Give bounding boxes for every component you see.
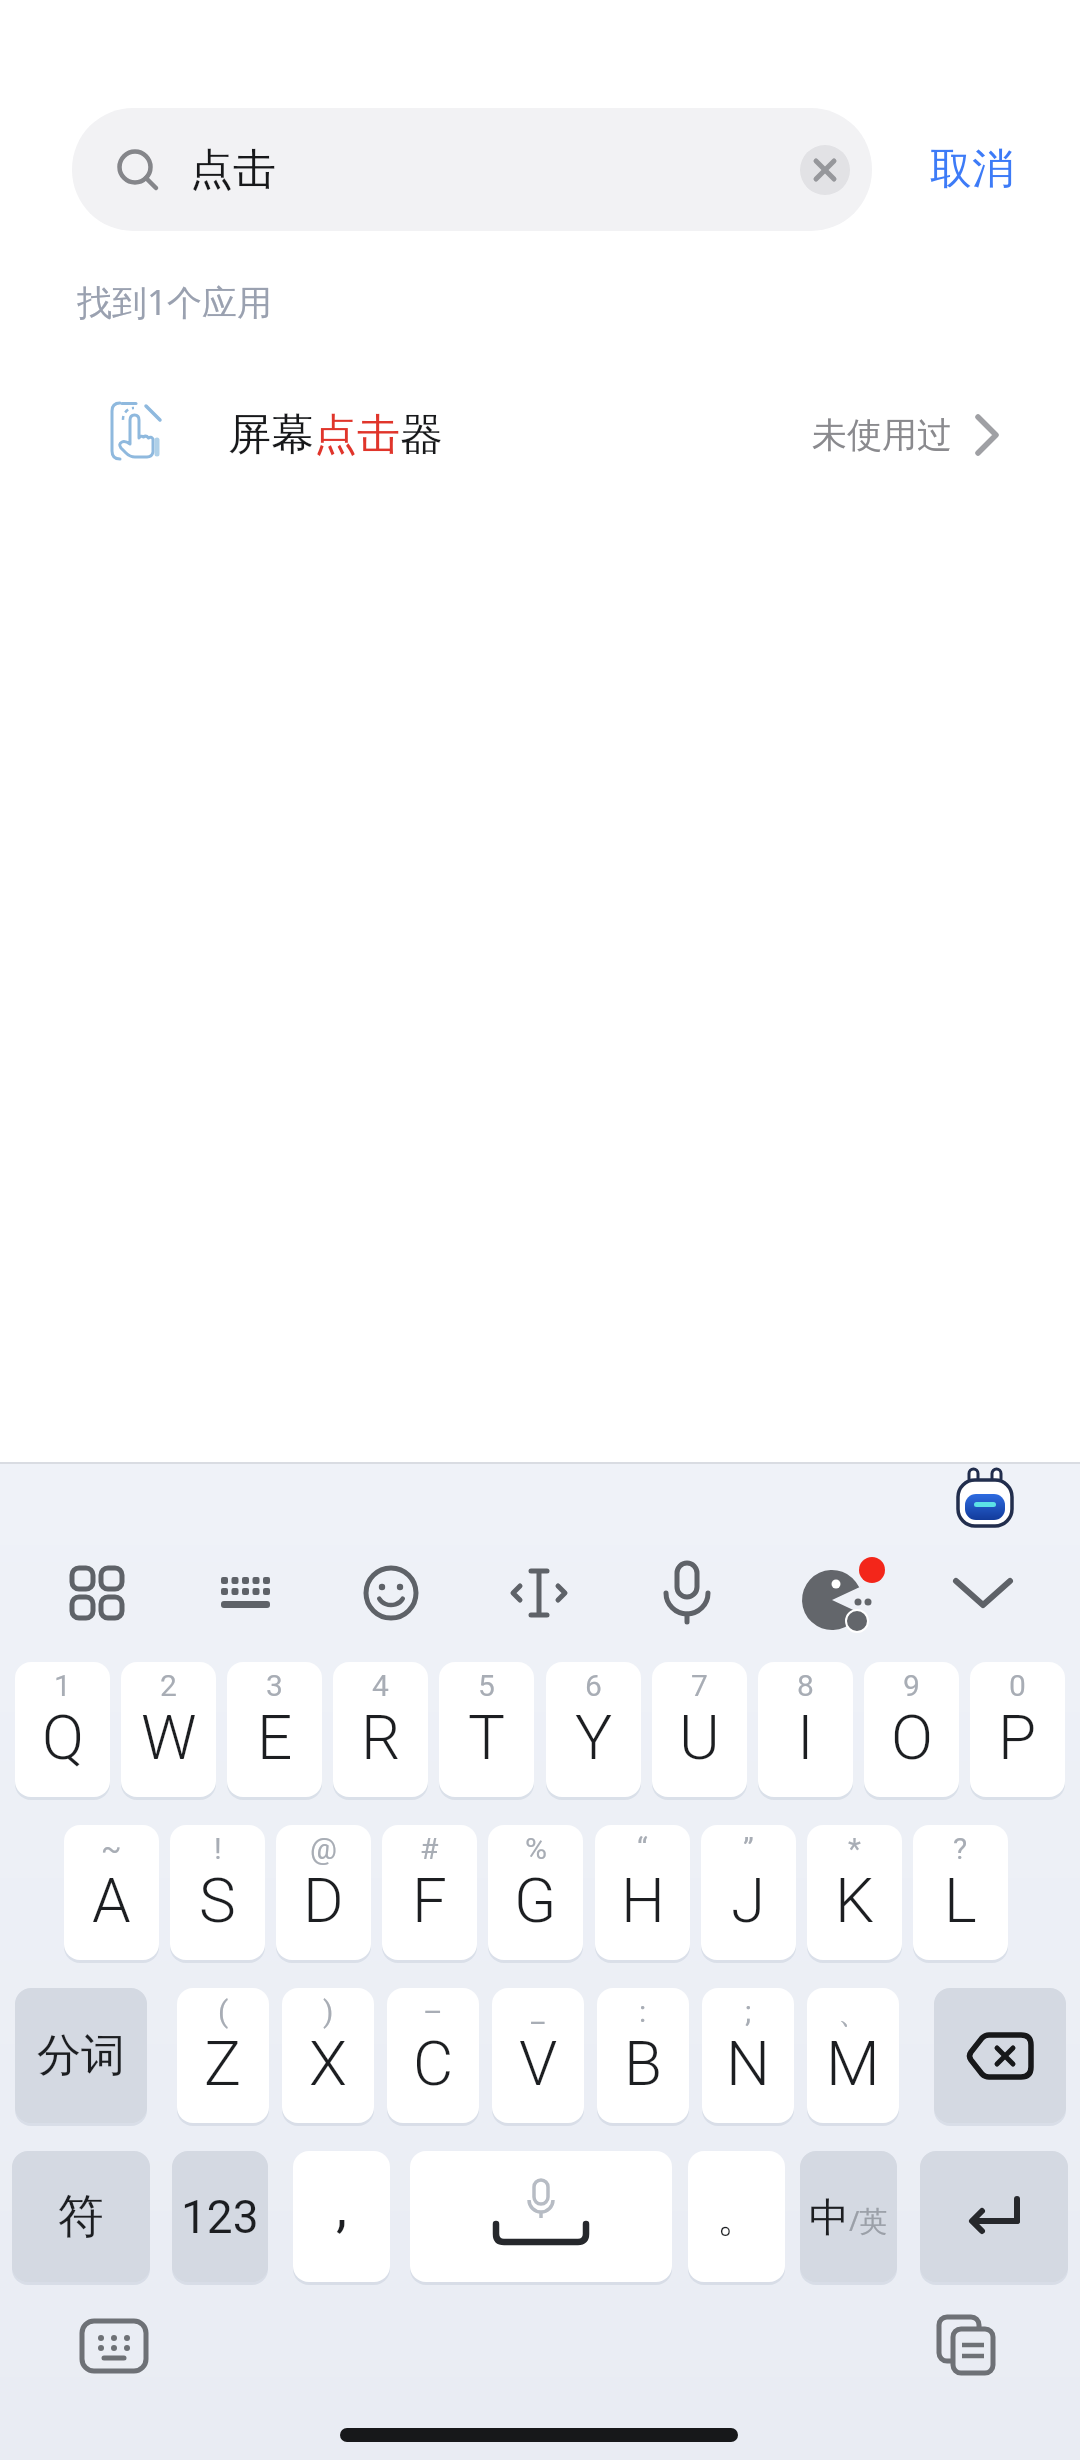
- button[interactable]: [58, 1554, 136, 1632]
- button[interactable]: [352, 1554, 430, 1632]
- staticText: @: [310, 1831, 337, 1866]
- button[interactable]: ”: [701, 1825, 796, 1960]
- button[interactable]: ;: [702, 1988, 794, 2123]
- button[interactable]: [934, 1988, 1066, 2123]
- staticText: J: [731, 1864, 766, 1937]
- button[interactable]: ,: [293, 2151, 390, 2282]
- staticText: 找到1个应用: [77, 278, 273, 326]
- button[interactable]: [944, 1554, 1022, 1632]
- button[interactable]: –: [387, 1988, 479, 2123]
- staticText: 取消: [930, 143, 1014, 196]
- staticText: A: [92, 1864, 131, 1937]
- staticText: 。: [717, 2192, 757, 2242]
- button[interactable]: 中/英: [800, 2151, 897, 2282]
- button[interactable]: 6: [546, 1662, 641, 1797]
- button[interactable]: 屏幕点击器: [72, 380, 1032, 490]
- staticText: 中/英: [809, 2192, 888, 2242]
- button[interactable]: %: [488, 1825, 583, 1960]
- button[interactable]: 取消: [912, 108, 1032, 231]
- staticText: D: [303, 1864, 344, 1937]
- staticText: H: [621, 1864, 665, 1937]
- button[interactable]: :: [597, 1988, 689, 2123]
- button[interactable]: “: [595, 1825, 690, 1960]
- staticText: ;: [745, 1994, 752, 2029]
- staticText: P: [998, 1701, 1037, 1774]
- button[interactable]: [796, 1554, 874, 1632]
- staticText: Q: [42, 1701, 84, 1774]
- button[interactable]: 分词: [15, 1988, 147, 2123]
- staticText: (: [218, 1994, 229, 2029]
- staticText: W: [141, 1701, 197, 1774]
- staticText: –: [423, 1994, 443, 2029]
- button[interactable]: [410, 2151, 672, 2282]
- button[interactable]: ): [282, 1988, 374, 2123]
- staticText: :: [639, 1994, 647, 2029]
- staticText: 2: [160, 1668, 177, 1703]
- button[interactable]: [206, 1554, 284, 1632]
- button[interactable]: 9: [864, 1662, 959, 1797]
- button[interactable]: 。: [688, 2151, 785, 2282]
- button[interactable]: 、: [807, 1988, 899, 2123]
- button[interactable]: 8: [758, 1662, 853, 1797]
- staticText: O: [891, 1701, 933, 1774]
- button[interactable]: 5: [439, 1662, 534, 1797]
- staticText: C: [413, 2027, 454, 2100]
- button[interactable]: 点击: [72, 108, 872, 231]
- button[interactable]: !: [170, 1825, 265, 1960]
- staticText: 5: [478, 1668, 495, 1703]
- staticText: 符: [58, 2188, 104, 2246]
- staticText: B: [624, 2027, 662, 2100]
- button[interactable]: ?: [913, 1825, 1008, 1960]
- button[interactable]: [956, 1468, 1016, 1528]
- staticText: F: [412, 1864, 447, 1937]
- button[interactable]: 3: [227, 1662, 322, 1797]
- button[interactable]: [800, 145, 850, 195]
- staticText: _: [531, 1994, 545, 2029]
- staticText: 8: [797, 1668, 814, 1703]
- button[interactable]: [648, 1554, 726, 1632]
- staticText: E: [257, 1701, 293, 1774]
- staticText: *: [848, 1831, 861, 1866]
- staticText: X: [309, 2027, 347, 2100]
- staticText: 6: [585, 1668, 602, 1703]
- button[interactable]: 符: [12, 2151, 150, 2282]
- staticText: 点击: [190, 143, 276, 197]
- button[interactable]: [920, 2151, 1068, 2282]
- staticText: 1: [54, 1668, 71, 1703]
- button[interactable]: (: [177, 1988, 269, 2123]
- staticText: !: [214, 1831, 222, 1866]
- button[interactable]: #: [382, 1825, 477, 1960]
- staticText: I: [797, 1701, 814, 1774]
- staticText: N: [726, 2027, 771, 2100]
- staticText: 分词: [37, 2028, 125, 2083]
- staticText: 7: [691, 1668, 708, 1703]
- staticText: “: [637, 1831, 648, 1866]
- staticText: 9: [903, 1668, 920, 1703]
- staticText: 0: [1009, 1668, 1026, 1703]
- staticText: L: [944, 1864, 977, 1937]
- staticText: ?: [953, 1831, 968, 1866]
- button[interactable]: @: [276, 1825, 371, 1960]
- button[interactable]: ~: [64, 1825, 159, 1960]
- button[interactable]: *: [807, 1825, 902, 1960]
- button[interactable]: [932, 2312, 1000, 2380]
- button[interactable]: _: [492, 1988, 584, 2123]
- staticText: U: [679, 1701, 720, 1774]
- staticText: 3: [266, 1668, 283, 1703]
- staticText: Z: [204, 2027, 242, 2100]
- staticText: S: [199, 1864, 236, 1937]
- button[interactable]: 0: [970, 1662, 1065, 1797]
- button[interactable]: [80, 2312, 148, 2380]
- staticText: 屏幕点击器: [228, 408, 443, 462]
- button[interactable]: 1: [15, 1662, 110, 1797]
- button[interactable]: 7: [652, 1662, 747, 1797]
- staticText: #: [420, 1831, 439, 1866]
- button[interactable]: 123: [172, 2151, 268, 2282]
- button[interactable]: 4: [333, 1662, 428, 1797]
- staticText: 、: [838, 1994, 868, 2032]
- staticText: R: [361, 1701, 401, 1774]
- staticText: Y: [575, 1701, 613, 1774]
- button[interactable]: [500, 1554, 578, 1632]
- button[interactable]: 2: [121, 1662, 216, 1797]
- staticText: ~: [101, 1831, 122, 1866]
